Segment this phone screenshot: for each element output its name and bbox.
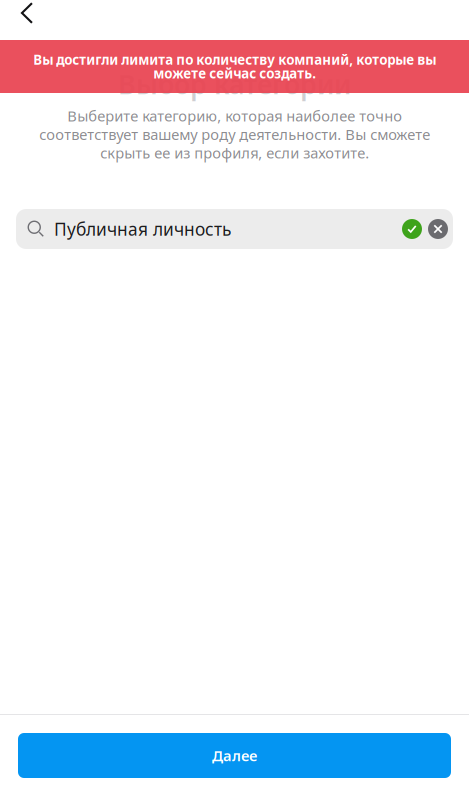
button[interactable]: Confirm category bbox=[402, 219, 422, 239]
staticText: Выберите категорию, которая наиболее точ… bbox=[39, 106, 430, 162]
staticText: Вы достигли лимита по количеству компани… bbox=[33, 51, 436, 82]
staticText: Выбор категории bbox=[118, 66, 351, 102]
button[interactable]: Далее bbox=[18, 733, 451, 778]
button[interactable]: Clear bbox=[422, 219, 448, 239]
button[interactable]: Back bbox=[5, 0, 49, 29]
staticText: Публичная личность bbox=[54, 217, 231, 240]
staticText: Далее bbox=[212, 746, 257, 765]
button[interactable]: Публичная личность bbox=[16, 209, 453, 249]
